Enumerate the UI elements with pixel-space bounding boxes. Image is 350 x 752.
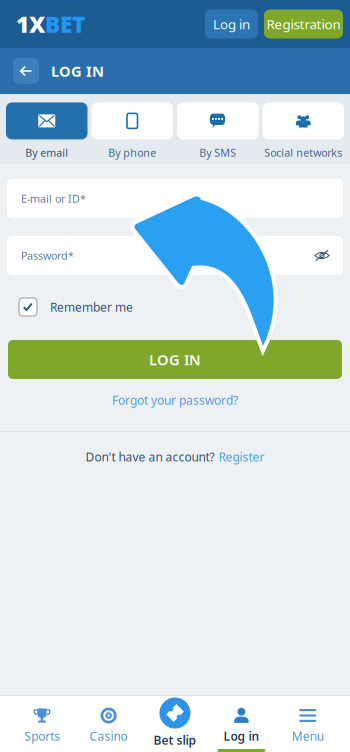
staticText: Sports: [24, 728, 60, 744]
staticText: Social networks: [264, 145, 342, 160]
staticText: BET: [45, 9, 85, 39]
button[interactable]: Forgot your password?: [112, 390, 238, 410]
staticText: By email: [25, 145, 68, 160]
button[interactable]: Menu: [275, 696, 341, 752]
staticText: Password*: [21, 248, 74, 263]
staticText: E-mail or ID*: [21, 191, 86, 206]
button[interactable]: Log in: [205, 9, 258, 38]
button[interactable]: Register: [218, 449, 264, 465]
button[interactable]: By SMS: [177, 102, 258, 160]
staticText: Registration: [266, 15, 340, 33]
staticText: 1X: [16, 9, 45, 39]
staticText: Log in: [213, 15, 250, 33]
button[interactable]: By email: [6, 102, 87, 160]
button[interactable]: LOG IN: [8, 340, 342, 379]
button[interactable]: Sports: [9, 696, 75, 752]
staticText: By phone: [108, 145, 156, 160]
button[interactable]: Remember me: [0, 296, 350, 318]
staticText: Bet slip: [153, 732, 196, 748]
staticText: Register: [218, 449, 264, 465]
button[interactable]: Log in: [208, 696, 275, 752]
staticText: Don't have an account?: [85, 449, 214, 465]
button[interactable]: Back: [13, 58, 39, 84]
button[interactable]: Registration: [264, 9, 343, 38]
staticText: Casino: [90, 728, 128, 744]
staticText: By SMS: [199, 145, 236, 160]
button[interactable]: Casino: [75, 696, 142, 752]
staticText: LOG IN: [149, 350, 201, 369]
staticText: Forgot your password?: [112, 392, 238, 408]
button[interactable]: By phone: [91, 102, 173, 160]
button[interactable]: Social networks: [262, 102, 344, 160]
staticText: LOG IN: [51, 61, 104, 81]
staticText: Menu: [292, 728, 324, 744]
staticText: Remember me: [50, 299, 133, 315]
button[interactable]: Bet slip: [142, 696, 208, 752]
staticText: Log in: [223, 728, 259, 744]
button[interactable]: Show password: [314, 249, 330, 262]
